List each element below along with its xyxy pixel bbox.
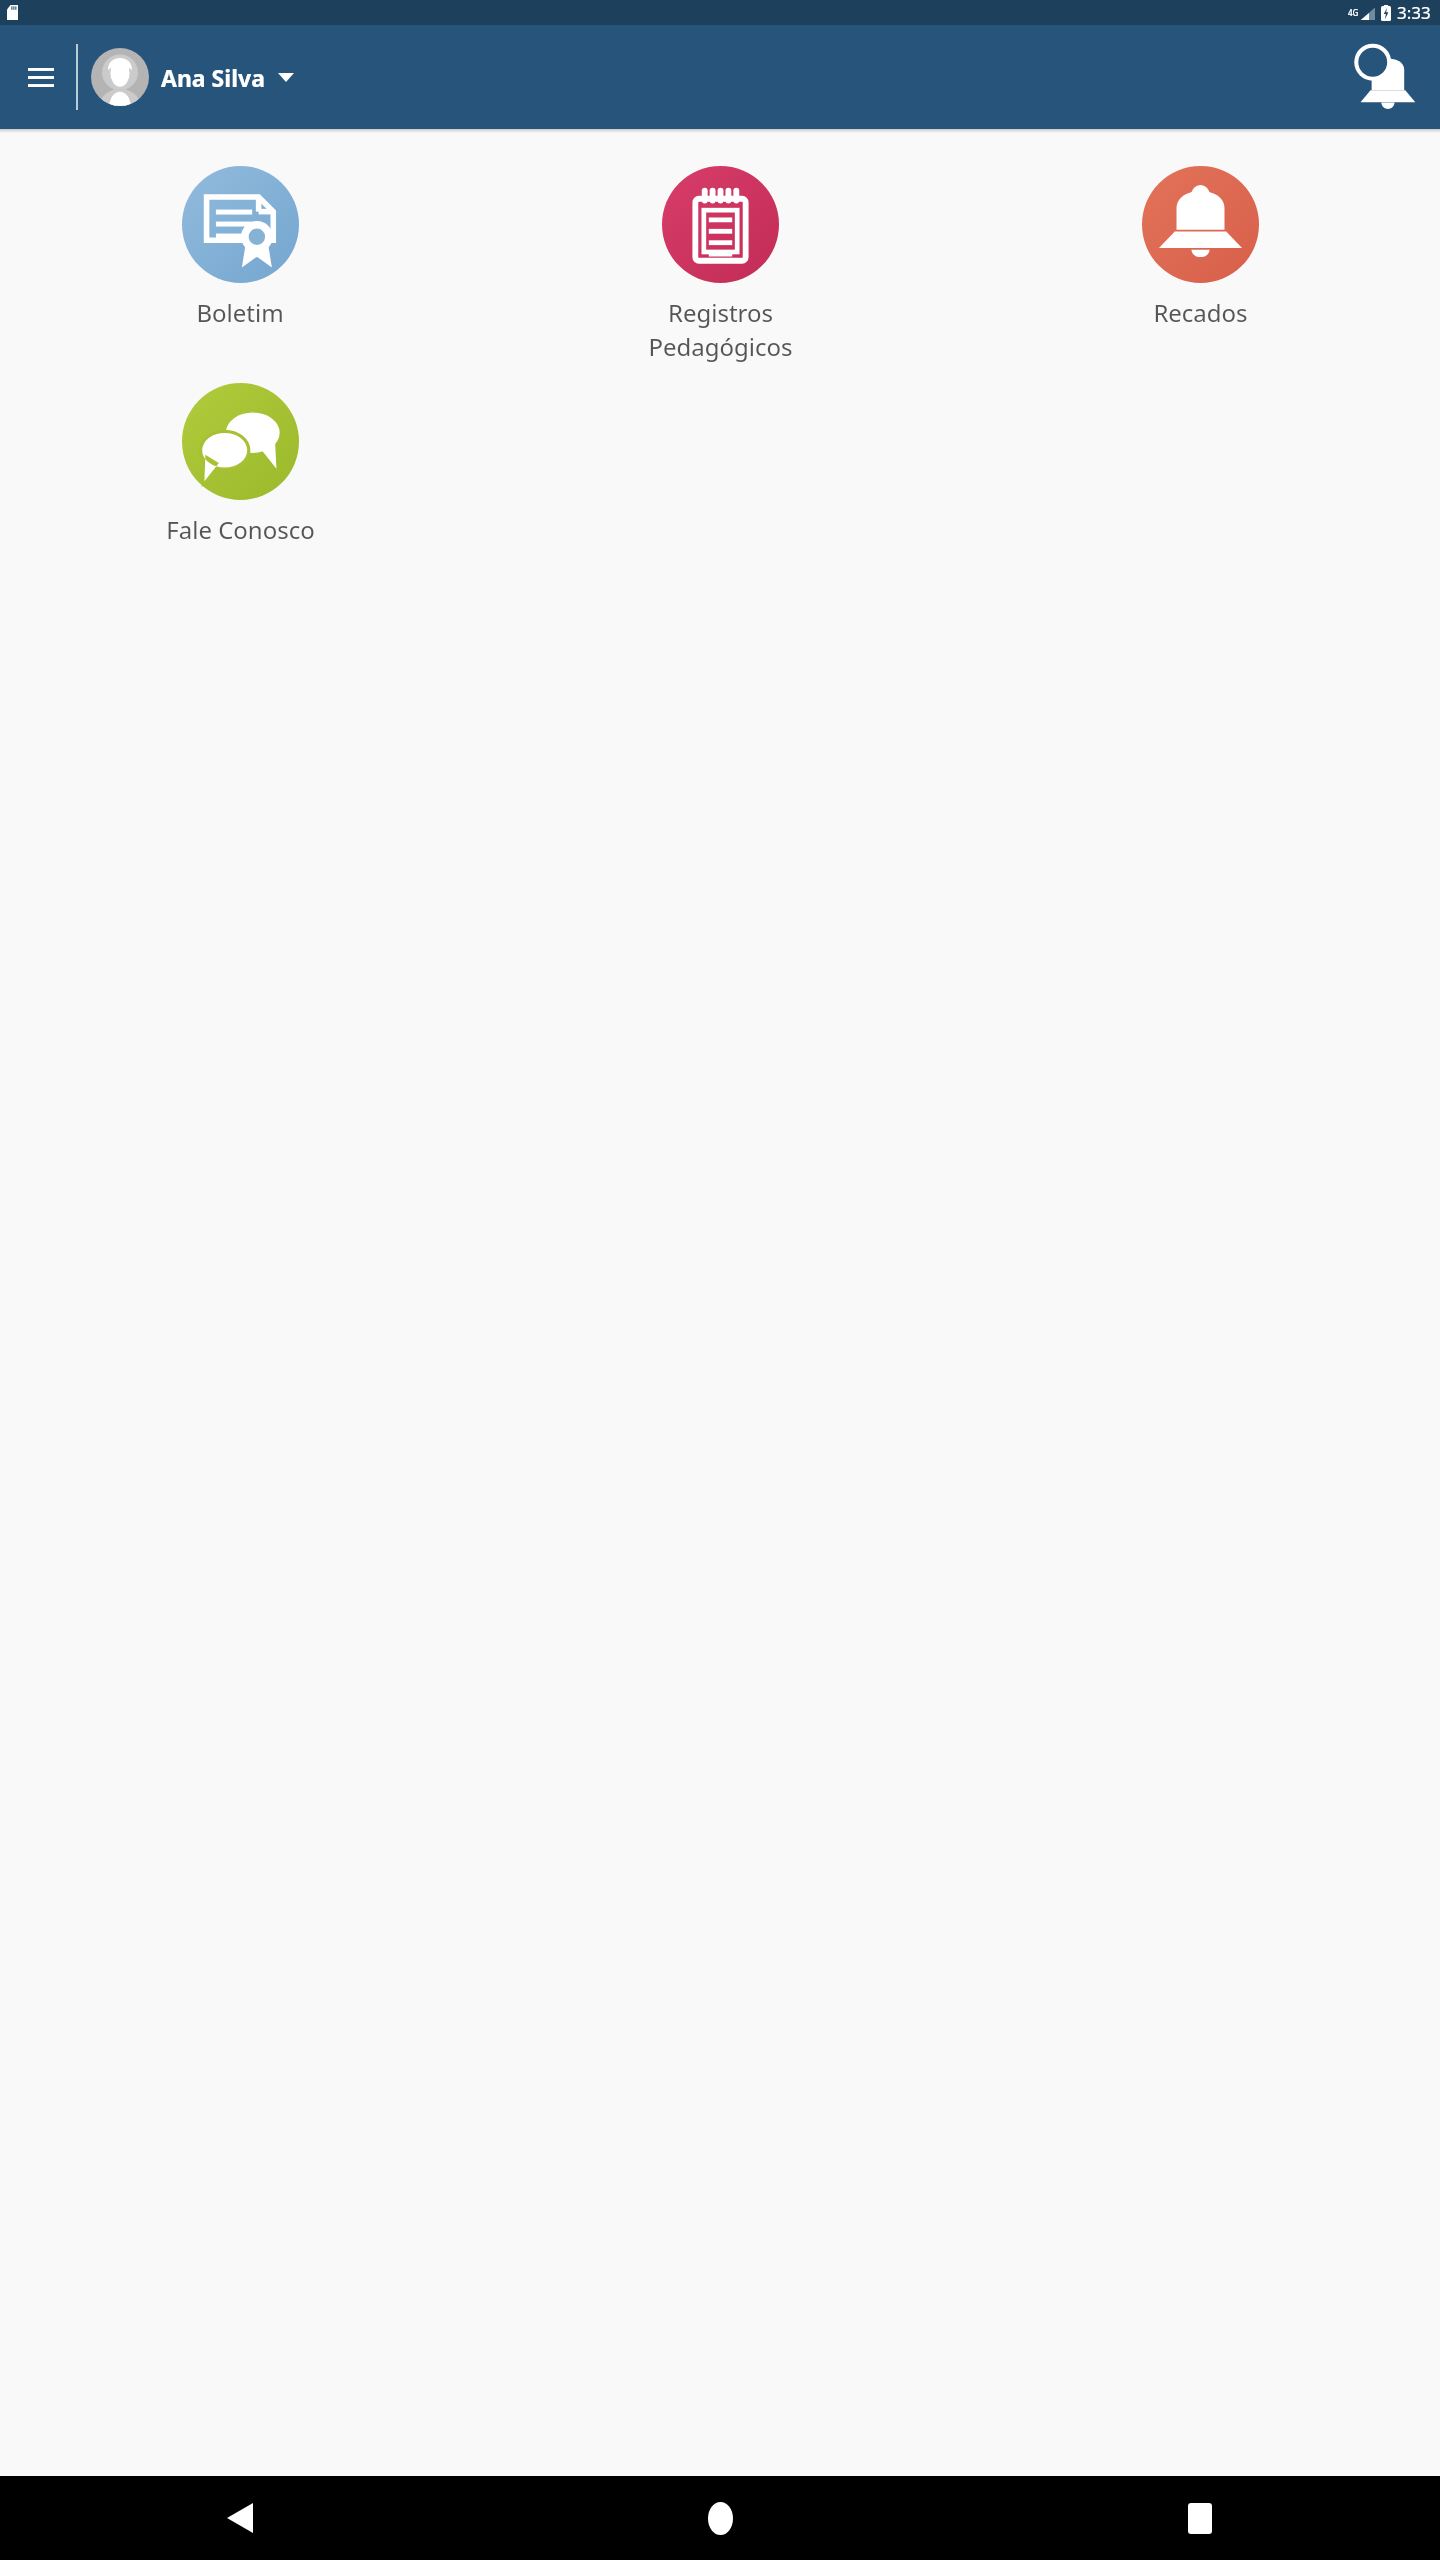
staticText: Recados — [1153, 296, 1248, 329]
button[interactable]: Notifications, 3 unread — [1340, 35, 1424, 119]
staticText: Boletim — [196, 296, 284, 329]
button[interactable]: Boletim — [0, 166, 480, 329]
button[interactable]: Recent apps — [960, 2476, 1440, 2560]
staticText: Ana Silva — [161, 62, 265, 93]
staticText: Fale Conosco — [166, 513, 315, 546]
button[interactable]: Ana Silva — [91, 48, 294, 106]
button[interactable]: Home — [480, 2476, 960, 2560]
button[interactable]: Recados — [960, 166, 1440, 329]
button[interactable]: Fale Conosco — [0, 383, 480, 546]
button[interactable]: Back — [0, 2476, 480, 2560]
button[interactable]: Registros Pedagógicos — [480, 166, 960, 363]
button[interactable]: Open navigation menu — [12, 48, 70, 106]
staticText: Registros Pedagógicos — [648, 296, 793, 363]
staticText: 4G — [1348, 7, 1359, 18]
staticText: 3:33 — [1397, 1, 1431, 24]
